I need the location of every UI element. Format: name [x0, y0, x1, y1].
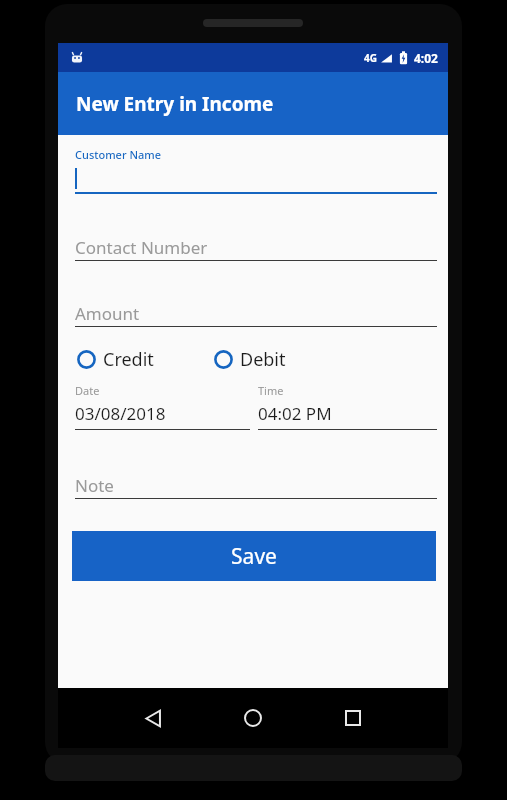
staticText: 04:02 PM — [258, 402, 332, 425]
staticText: 03/08/2018 — [75, 402, 166, 425]
staticText: Note — [75, 474, 114, 497]
button[interactable]: Home — [236, 701, 270, 735]
staticText: Time — [258, 383, 284, 398]
button[interactable]: Debit — [210, 346, 286, 372]
button[interactable]: Note — [75, 471, 437, 505]
button[interactable]: Save — [72, 531, 436, 581]
staticText: 4G — [364, 51, 377, 65]
button[interactable] — [75, 165, 437, 195]
button[interactable]: Credit — [73, 346, 154, 372]
button[interactable]: 03/08/2018 — [75, 400, 250, 434]
staticText: Save — [231, 542, 277, 571]
staticText: Date — [75, 383, 100, 398]
staticText: Customer Name — [75, 147, 161, 162]
staticText: Credit — [103, 347, 154, 372]
staticText: Amount — [75, 302, 140, 325]
button[interactable]: Recent apps — [336, 701, 370, 735]
staticText: 4:02 — [414, 50, 438, 66]
button[interactable]: 04:02 PM — [258, 400, 437, 434]
staticText: Contact Number — [75, 236, 208, 259]
button[interactable]: Back — [136, 701, 170, 735]
staticText: Debit — [240, 347, 286, 372]
button[interactable]: Contact Number — [75, 233, 437, 267]
staticText: New Entry in Income — [76, 91, 274, 117]
button[interactable]: Amount — [75, 299, 437, 333]
